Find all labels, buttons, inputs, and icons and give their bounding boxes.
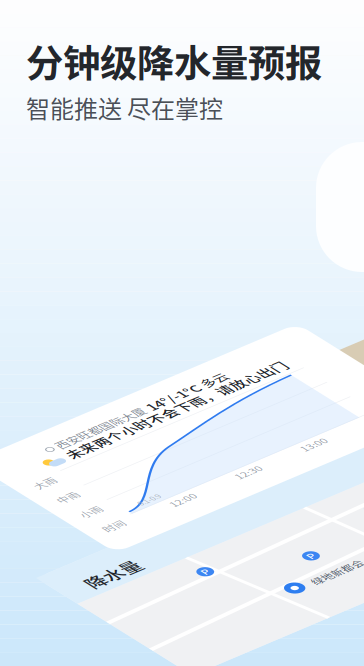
staticText: 降水量 [62, 600, 119, 627]
staticText: 未来两个小时不会下雨，请放心出门 [40, 496, 280, 517]
staticText: 西安旺都国际大厦 [43, 480, 139, 497]
staticText: P [150, 652, 157, 666]
staticText: 分钟级降水量预报 [26, 34, 322, 88]
staticText: 13:00 [200, 614, 227, 629]
staticText: 14°/-1°C [143, 478, 199, 499]
staticText: 多云 [203, 479, 229, 498]
staticText: 智能推送 尽在掌控 [26, 90, 223, 125]
